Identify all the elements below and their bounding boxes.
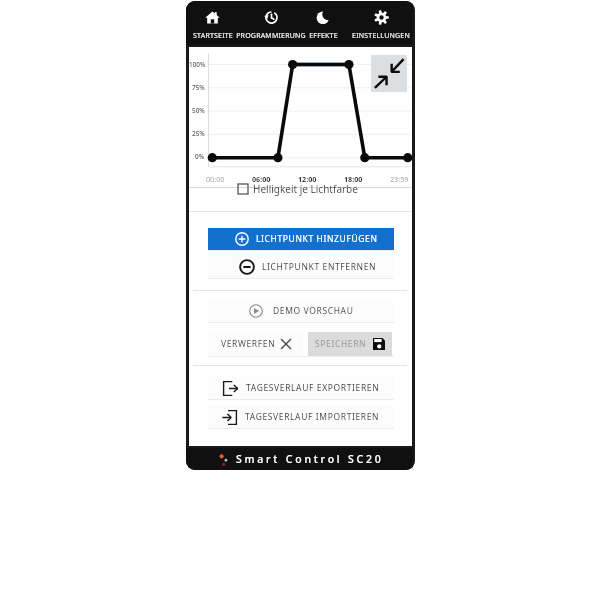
staticText: 12:00 (298, 174, 317, 184)
staticText: PROGRAMMIERUNG (236, 31, 306, 41)
staticText: 06:00 (252, 174, 271, 184)
staticText: STARTSEITE (193, 31, 233, 41)
staticText: EFFEKTE (309, 31, 338, 41)
staticText: LICHTPUNKT HINZUFÜGEN (256, 233, 378, 245)
staticText: TAGESVERLAUF IMPORTIEREN (245, 411, 380, 423)
button[interactable]: TAGESVERLAUF IMPORTIEREN (208, 406, 394, 428)
staticText: Helligkeit je Lichtfarbe (253, 182, 358, 196)
staticText: TAGESVERLAUF EXPORTIEREN (246, 382, 380, 394)
button[interactable]: LICHTPUNKT HINZUFÜGEN (208, 228, 394, 250)
staticText: 18:00 (344, 174, 363, 184)
staticText: SPEICHERN (315, 338, 367, 350)
staticText: VERWERFEN (221, 338, 276, 350)
button[interactable]: VERWERFEN (208, 332, 303, 356)
staticText: 50% (192, 106, 205, 115)
button[interactable]: LICHTPUNKT ENTFERNEN (208, 256, 394, 278)
staticText: 0% (195, 152, 205, 161)
staticText: LICHTPUNKT ENTFERNEN (262, 261, 377, 273)
button[interactable]: EINSTELLUNGEN (350, 1, 412, 45)
staticText: EINSTELLUNGEN (352, 31, 410, 41)
staticText: 25% (192, 129, 205, 138)
button[interactable]: SPEICHERN (308, 332, 392, 356)
staticText: 75% (192, 83, 205, 92)
button[interactable]: Helligkeit je Lichtfarbe (189, 181, 412, 196)
button[interactable]: Collapse chart (371, 55, 407, 92)
button[interactable]: EFFEKTE (300, 1, 347, 45)
staticText: 100% (189, 60, 205, 69)
staticText: DEMO VORSCHAU (273, 305, 354, 317)
staticText: 23:59 (390, 174, 409, 184)
button[interactable]: PROGRAMMIERUNG (235, 1, 307, 45)
button[interactable]: STARTSEITE (189, 1, 236, 45)
button[interactable]: TAGESVERLAUF EXPORTIEREN (208, 377, 394, 399)
staticText: 00:00 (206, 174, 225, 184)
button[interactable]: DEMO VORSCHAU (208, 300, 394, 322)
staticText: Smart Control SC20 (236, 452, 384, 466)
